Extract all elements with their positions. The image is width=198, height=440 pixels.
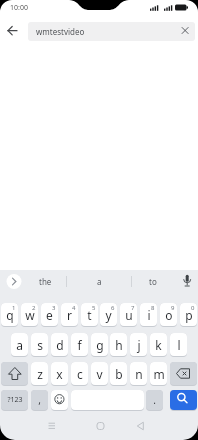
staticText: g (96, 337, 104, 353)
staticText: a (97, 276, 102, 287)
button[interactable] (1, 362, 28, 386)
staticText: r (67, 307, 72, 323)
staticText: d (56, 337, 64, 353)
button[interactable]: q (1, 303, 18, 327)
button[interactable]: t (81, 303, 98, 327)
staticText: c (77, 366, 83, 382)
button[interactable]: a (11, 333, 28, 357)
staticText: ?123 (7, 395, 23, 405)
staticText: v (96, 366, 103, 382)
button[interactable]: v (91, 362, 108, 386)
staticText: h (115, 337, 123, 353)
staticText: p (185, 307, 193, 323)
button[interactable]: e (41, 303, 58, 327)
button[interactable]: g (91, 333, 108, 357)
button[interactable] (40, 417, 64, 437)
button[interactable] (170, 362, 197, 386)
staticText: . (153, 393, 156, 407)
staticText: k (155, 337, 162, 353)
button[interactable] (170, 390, 197, 411)
staticText: to (149, 276, 157, 287)
staticText: m (153, 366, 165, 382)
staticText: q (6, 307, 14, 323)
staticText: wmtestvideo (36, 26, 85, 37)
button[interactable] (88, 417, 112, 437)
staticText: 4 (72, 304, 76, 312)
staticText: t (87, 307, 92, 323)
button[interactable]: n (130, 362, 147, 386)
button[interactable]: to (132, 270, 174, 292)
button[interactable]: the (24, 270, 66, 292)
staticText: f (77, 337, 82, 353)
staticText: 2 (32, 304, 36, 312)
staticText: e (46, 307, 53, 323)
button[interactable] (2, 20, 26, 42)
button[interactable]: , (31, 390, 48, 411)
staticText: s (37, 337, 43, 353)
staticText: a (16, 337, 23, 353)
button[interactable]: u (120, 303, 137, 327)
staticText: y (105, 307, 112, 323)
staticText: 6 (111, 304, 115, 312)
staticText: o (165, 307, 173, 323)
button[interactable]: m (150, 362, 167, 386)
staticText: w (25, 307, 35, 323)
staticText: 3 (52, 304, 56, 312)
button[interactable]: x (51, 362, 68, 386)
staticText: , (38, 393, 41, 407)
staticText: the (39, 276, 52, 287)
button[interactable] (71, 390, 144, 411)
staticText: 9 (171, 304, 175, 312)
staticText: z (37, 366, 43, 382)
button[interactable]: b (110, 362, 127, 386)
button[interactable]: ?123 (1, 390, 28, 411)
staticText: 7 (131, 304, 135, 312)
button[interactable]: . (146, 390, 163, 411)
staticText: n (135, 366, 143, 382)
staticText: x (56, 366, 63, 382)
staticText: i (147, 307, 151, 323)
staticText: 10:00 (10, 3, 28, 13)
staticText: 8 (151, 304, 155, 312)
button[interactable]: z (31, 362, 48, 386)
button[interactable]: f (71, 333, 88, 357)
staticText: j (137, 337, 141, 353)
button[interactable] (128, 417, 152, 437)
button[interactable]: o (160, 303, 177, 327)
staticText: 0 (191, 304, 195, 312)
button[interactable]: j (130, 333, 147, 357)
button[interactable]: c (71, 362, 88, 386)
staticText: 1 (12, 304, 16, 312)
button[interactable]: r (61, 303, 78, 327)
button[interactable]: k (150, 333, 167, 357)
button[interactable]: d (51, 333, 68, 357)
button[interactable]: w (21, 303, 38, 327)
staticText: 5 (92, 304, 96, 312)
staticText: b (115, 366, 123, 382)
button[interactable]: i (140, 303, 157, 327)
staticText: l (177, 337, 181, 353)
button[interactable]: s (31, 333, 48, 357)
button[interactable] (51, 390, 68, 411)
button[interactable]: l (170, 333, 187, 357)
button[interactable]: wmtestvideo (28, 22, 195, 41)
button[interactable]: y (100, 303, 117, 327)
button[interactable]: h (110, 333, 127, 357)
staticText: u (125, 307, 133, 323)
button[interactable]: p (180, 303, 197, 327)
button[interactable]: a (67, 270, 131, 292)
